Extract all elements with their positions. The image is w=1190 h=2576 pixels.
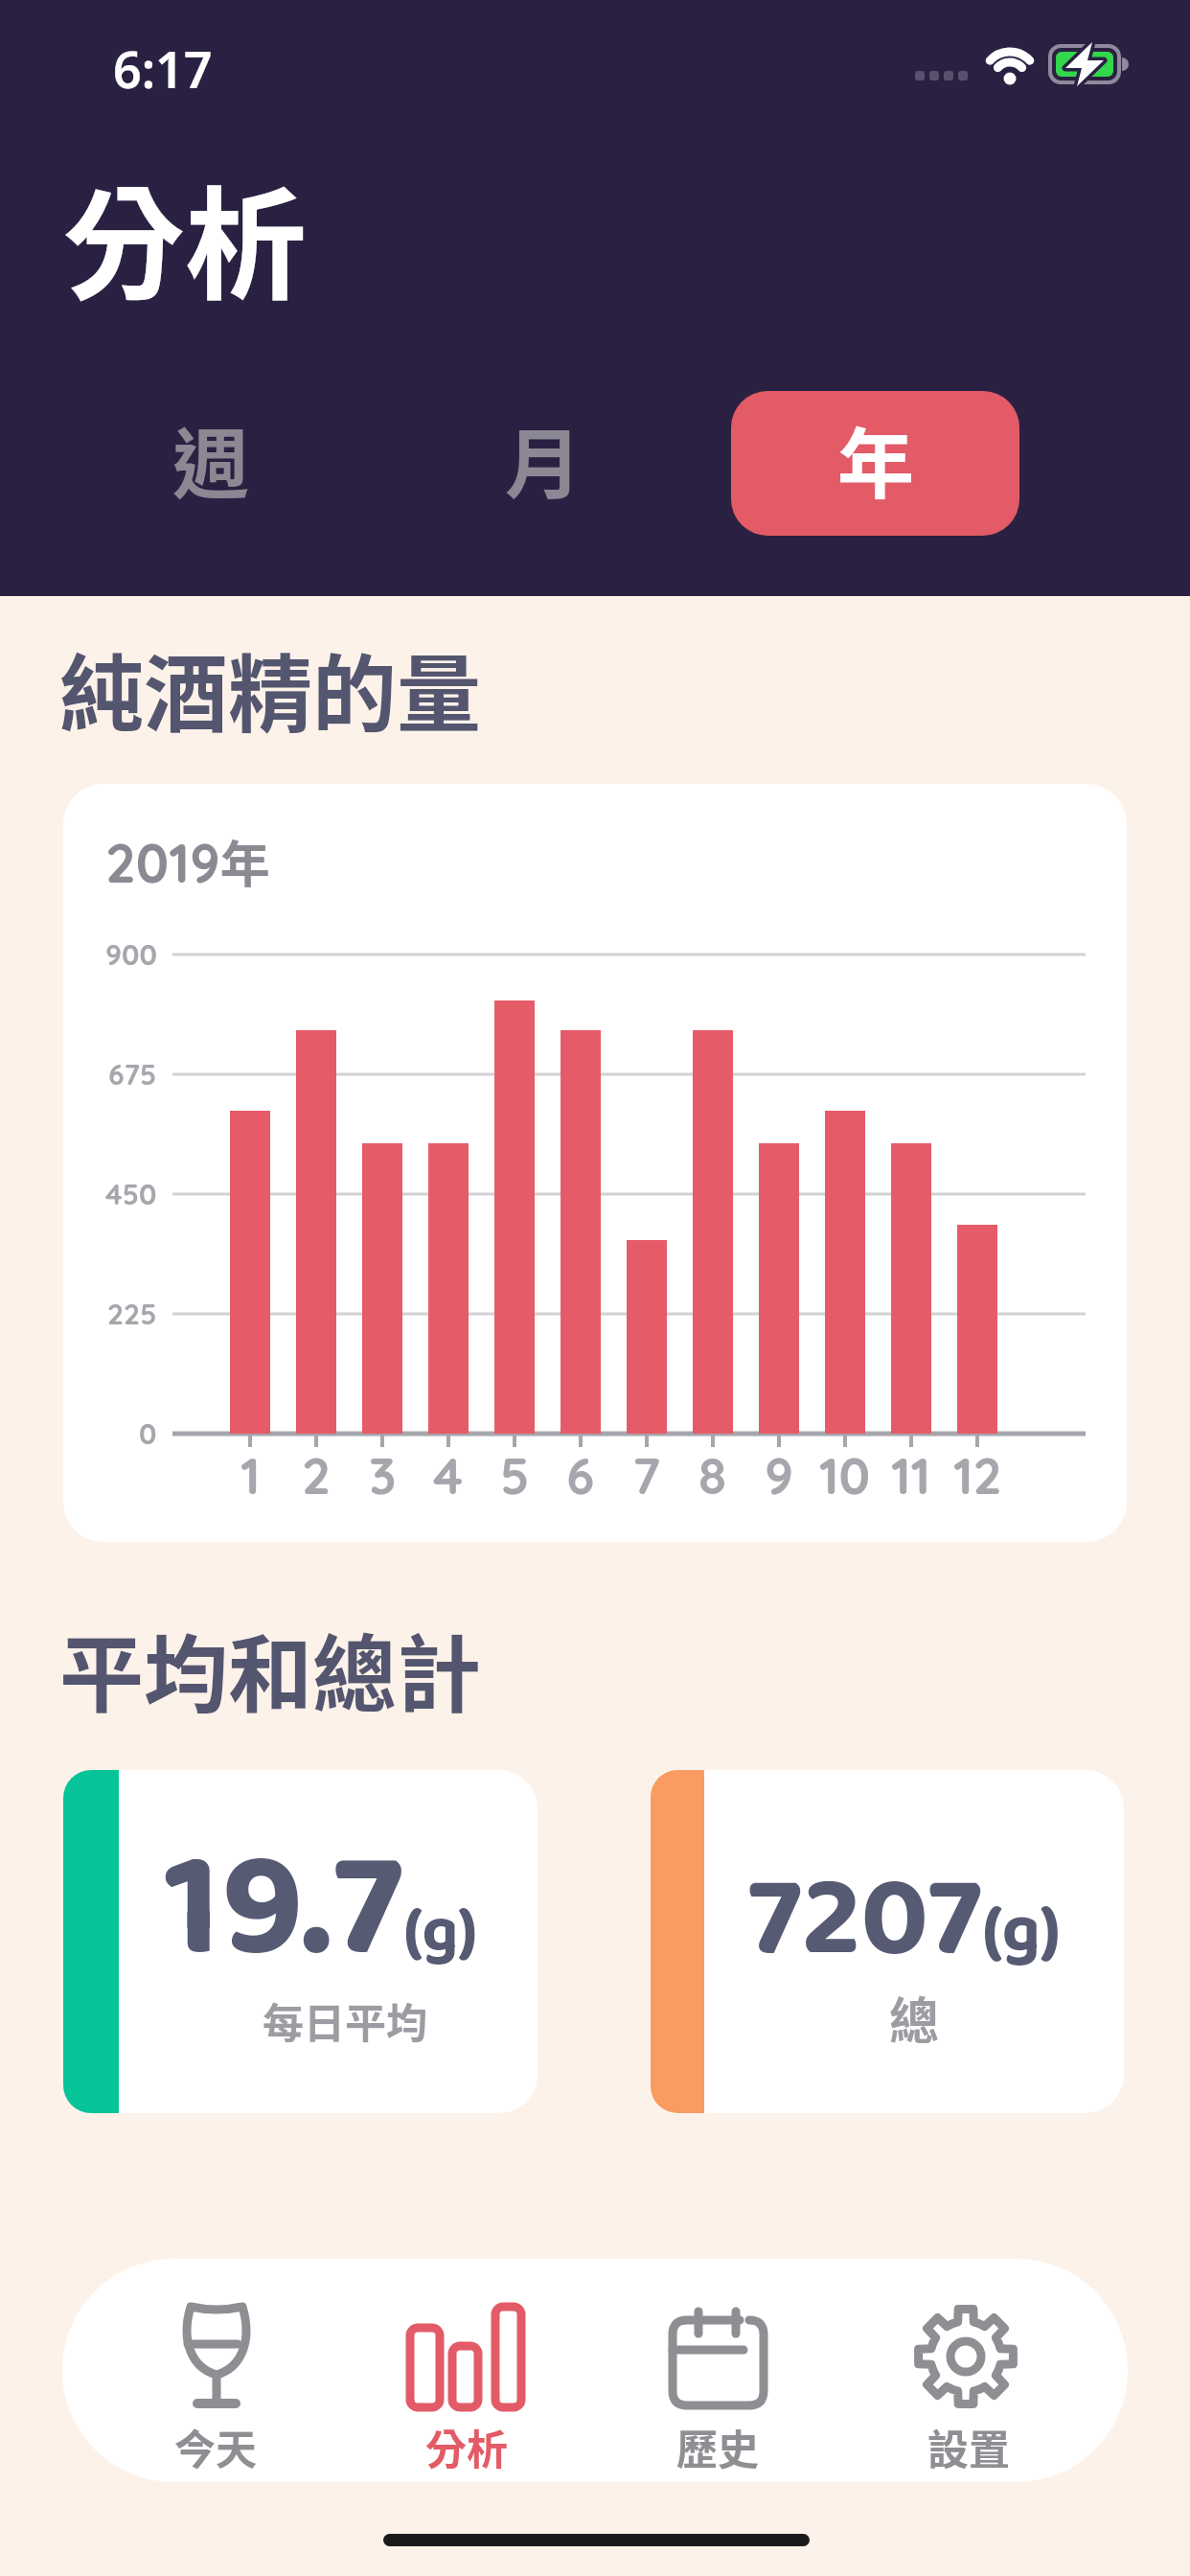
staticText: 1 (240, 1443, 261, 1501)
staticText: 平均和總計 (59, 1607, 482, 1722)
staticText: 10 (819, 1443, 871, 1501)
button[interactable] (854, 2281, 1084, 2472)
staticText: 每日平均 (263, 1990, 427, 2050)
staticText: 3 (369, 1443, 397, 1501)
button[interactable] (651, 1770, 1124, 2113)
staticText: 5 (500, 1443, 530, 1501)
staticText: 6:17 (113, 34, 213, 92)
staticText: 4 (433, 1443, 464, 1501)
staticText: 總 (889, 1982, 940, 2043)
button[interactable] (101, 2281, 331, 2472)
staticText: 9 (765, 1443, 794, 1501)
staticText: 分析 (425, 2417, 508, 2471)
button[interactable] (44, 391, 377, 536)
staticText: 0 (139, 1415, 157, 1452)
staticText: 7 (632, 1443, 661, 1501)
staticText: 225 (107, 1296, 157, 1332)
staticText: 年 (837, 402, 914, 514)
button[interactable] (731, 391, 1019, 536)
staticText: 週 (172, 402, 249, 514)
button[interactable] (63, 1770, 538, 2113)
staticText: 分析 (63, 149, 308, 325)
staticText: 900 (105, 936, 157, 973)
staticText: 6 (566, 1443, 595, 1501)
button[interactable] (377, 391, 709, 536)
button[interactable] (603, 2281, 833, 2472)
staticText: 11 (891, 1443, 931, 1501)
staticText: 今天 (174, 2417, 257, 2471)
staticText: 8 (698, 1443, 727, 1501)
staticText: 月 (505, 402, 582, 514)
staticText: 7207(g) (747, 1829, 1062, 2012)
staticText: 19.7(g) (164, 1791, 478, 2029)
staticText: 2019年 (105, 825, 270, 897)
staticText: 歷史 (676, 2417, 759, 2471)
staticText: 純酒精的量 (59, 627, 482, 742)
button[interactable] (352, 2281, 582, 2472)
staticText: 2 (302, 1443, 332, 1501)
staticText: 12 (953, 1443, 1002, 1501)
staticText: 設置 (927, 2417, 1010, 2471)
staticText: 675 (108, 1056, 157, 1092)
staticText: 450 (105, 1176, 157, 1212)
